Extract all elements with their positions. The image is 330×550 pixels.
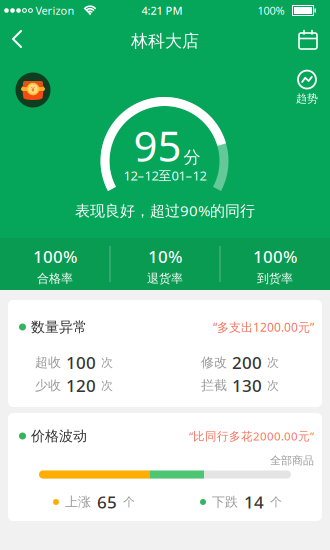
staticText: 200 [232,351,262,374]
button[interactable]: Back [0,20,44,58]
staticText: 次 [101,378,113,393]
staticText: 拦截 [201,377,227,394]
staticText: 价格波动 [31,427,87,445]
staticText: 到货率 [257,271,293,286]
staticText: 下跌 [212,494,238,510]
staticText: 120 [66,374,96,397]
staticText: 上涨 [65,494,91,510]
staticText: 次 [267,355,279,370]
staticText: 个 [270,494,282,509]
staticText: 数量异常 [31,318,87,336]
staticText: 超收 [35,354,61,371]
staticText: 全部商品 [270,454,314,467]
staticText: 林科大店 [131,30,199,52]
staticText: 分 [183,147,200,168]
staticText: 100 [66,351,96,374]
staticText: 退货率 [147,271,183,286]
staticText: 100% [253,245,297,268]
staticText: 65 [97,490,117,514]
button[interactable]: Calendar [286,20,330,58]
staticText: 合格率 [37,271,73,286]
staticText: 12–12至01–12 [123,167,206,184]
staticText: 130 [232,374,262,397]
staticText: 修改 [201,354,227,371]
staticText: 少收 [35,377,61,394]
staticText: 100% [257,3,284,18]
staticText: 14 [244,490,264,514]
staticText: 次 [267,378,279,393]
staticText: 个 [123,494,135,509]
staticText: 次 [101,355,113,370]
staticText: 表现良好，超过90%的同行 [75,200,255,221]
staticText: 4:21 PM [141,3,182,18]
staticText: “比同行多花2000.00元” [189,428,314,444]
button[interactable]: 趋势 [287,66,327,110]
staticText: 95 [133,117,181,174]
staticText: ¥ [31,84,35,94]
staticText: Verizon [35,3,74,18]
staticText: 100% [33,245,77,268]
staticText: 10% [148,245,182,268]
staticText: “多支出1200.00元” [213,319,314,335]
staticText: 趋势 [296,92,318,105]
